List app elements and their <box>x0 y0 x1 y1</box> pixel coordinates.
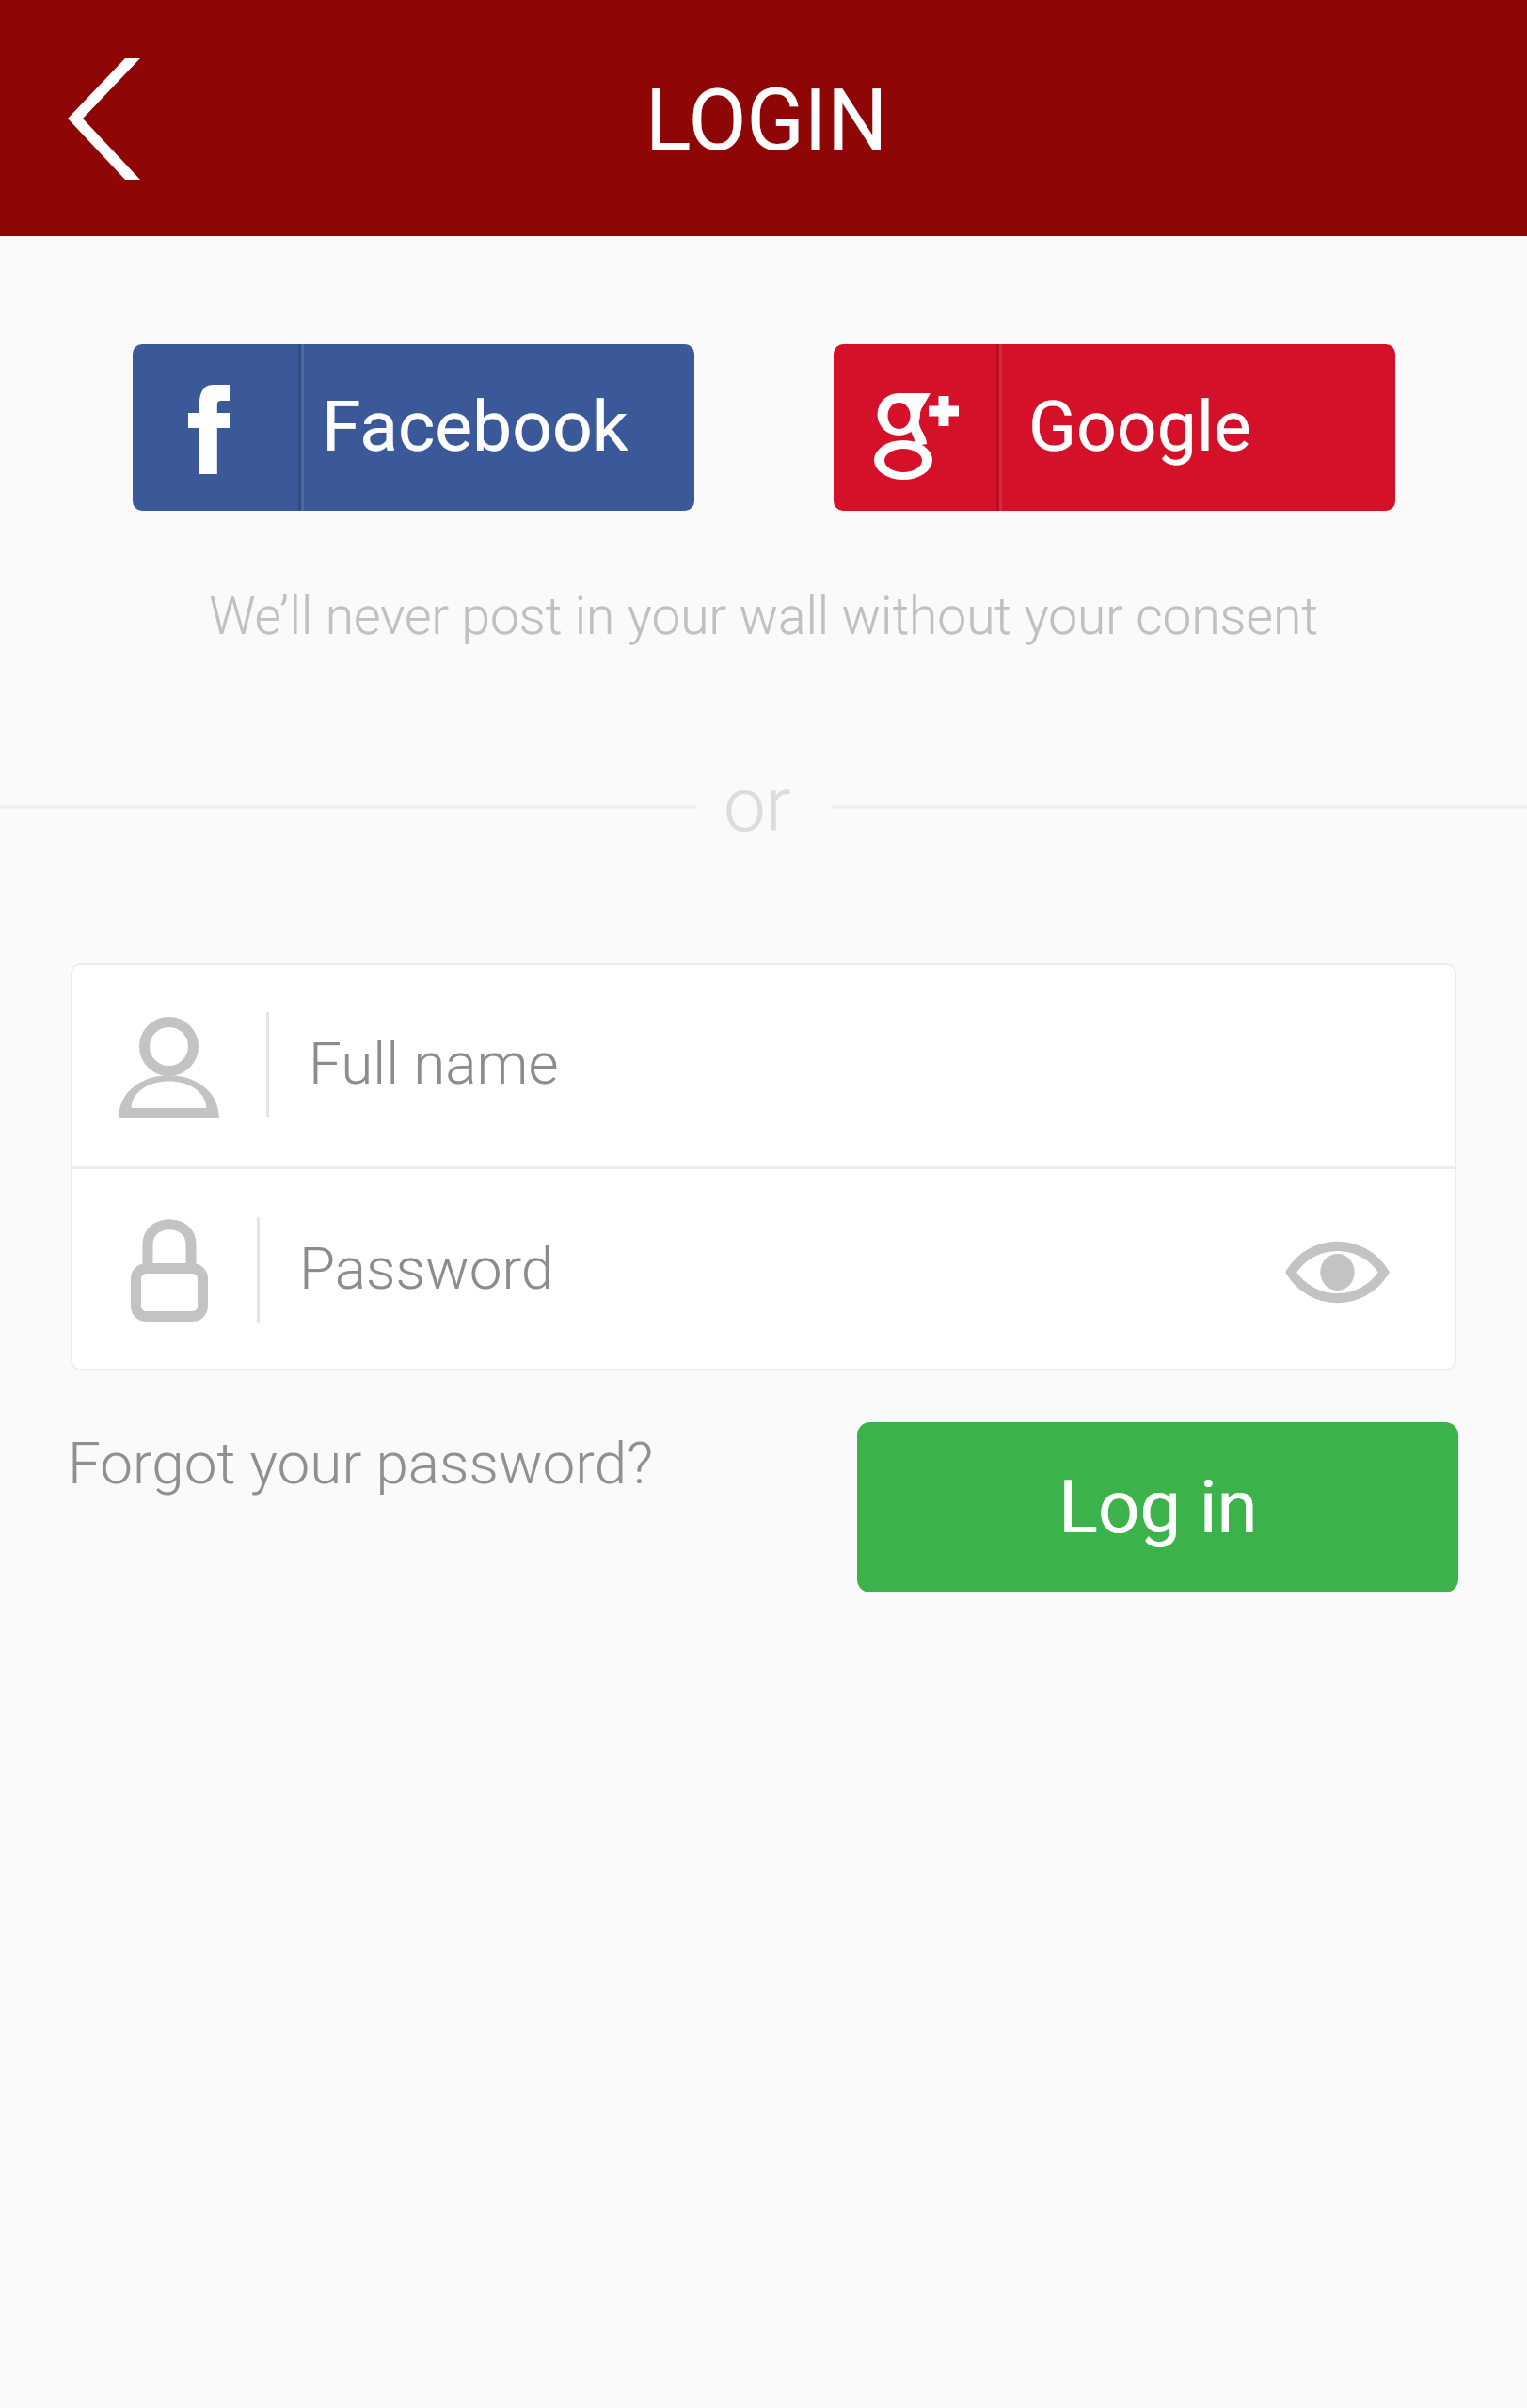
button[interactable]: Password <box>71 1169 1456 1370</box>
button[interactable]: Log in <box>857 1422 1458 1592</box>
button[interactable]: Show password <box>1266 1199 1408 1340</box>
button[interactable]: Forgot your password? <box>68 1429 654 1497</box>
button[interactable]: Facebook <box>133 344 694 511</box>
staticText: Full name <box>309 1029 559 1098</box>
button[interactable]: Back <box>21 11 188 226</box>
button[interactable]: Google <box>834 344 1395 511</box>
button[interactable]: Full name <box>71 963 1456 1166</box>
staticText: Google <box>1028 385 1251 467</box>
staticText: Log in <box>1058 1465 1258 1550</box>
staticText: We’ll never post in your wall without yo… <box>0 586 1527 646</box>
staticText: or <box>724 761 791 849</box>
staticText: LOGIN <box>645 71 888 170</box>
staticText: Facebook <box>322 385 628 467</box>
staticText: Password <box>299 1234 554 1303</box>
